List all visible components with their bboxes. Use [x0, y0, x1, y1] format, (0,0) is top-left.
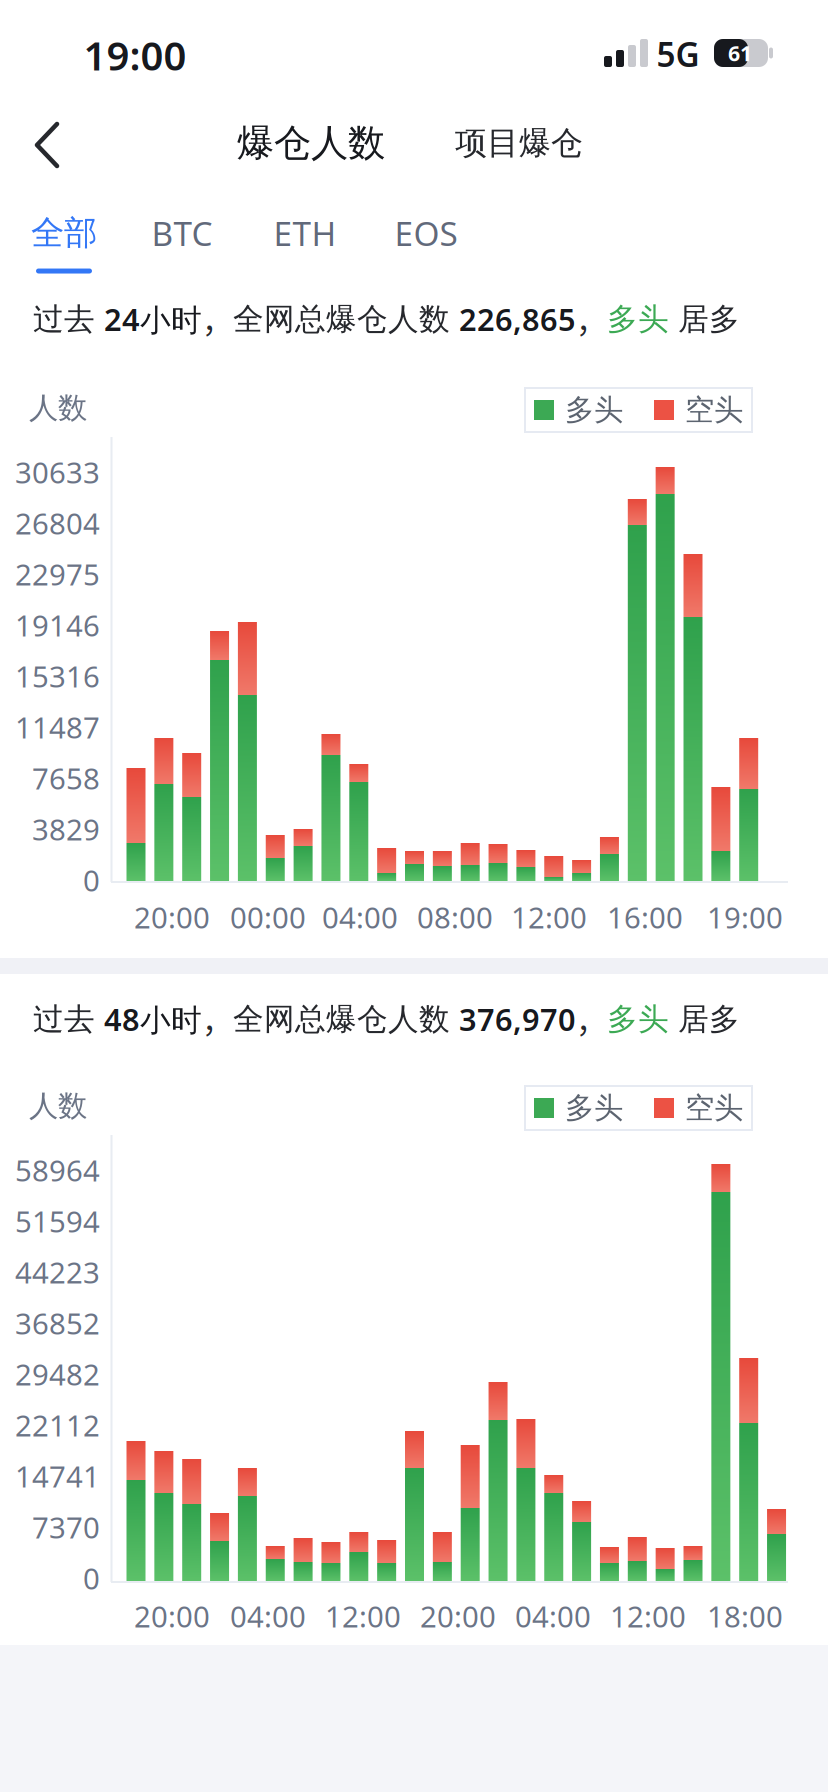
staticText: 多头: [565, 392, 623, 428]
staticText: 爆仓人数: [237, 120, 385, 166]
staticText: 多头: [607, 1000, 669, 1038]
staticText: 04:00: [515, 1596, 591, 1635]
staticText: 11487: [15, 707, 100, 746]
staticText: 居多: [669, 300, 740, 338]
button[interactable]: 项目爆仓: [455, 123, 583, 163]
staticText: 12:00: [511, 897, 587, 936]
button[interactable]: EOS: [394, 211, 457, 255]
button[interactable]: 空头: [654, 392, 743, 428]
staticText: 空头: [685, 1090, 743, 1126]
staticText: EOS: [394, 211, 457, 255]
staticText: ，: [576, 997, 607, 1041]
button[interactable]: 空头: [654, 1090, 743, 1126]
staticText: 04:00: [230, 1596, 306, 1635]
staticText: 376,970: [459, 999, 576, 1039]
staticText: 04:00: [322, 897, 398, 936]
staticText: 全网总爆仓人数: [233, 300, 459, 338]
staticText: 多头: [565, 1090, 623, 1126]
staticText: 24小时: [104, 299, 202, 339]
staticText: 0: [83, 860, 100, 899]
staticText: ETH: [273, 211, 336, 255]
staticText: 空头: [685, 392, 743, 428]
staticText: 全部: [31, 212, 97, 253]
staticText: 51594: [15, 1201, 100, 1240]
staticText: 18:00: [707, 1596, 783, 1635]
staticText: 226,865: [459, 299, 576, 339]
staticText: 3829: [32, 809, 100, 848]
button[interactable]: 多头: [534, 1090, 623, 1126]
staticText: 0: [83, 1558, 100, 1597]
button[interactable]: Back: [34, 121, 60, 169]
button[interactable]: 全部: [31, 212, 97, 253]
staticText: 全网总爆仓人数: [233, 1000, 459, 1038]
staticText: 48小时: [104, 999, 202, 1039]
staticText: 20:00: [134, 897, 210, 936]
staticText: 36852: [15, 1303, 100, 1342]
button[interactable]: ETH: [273, 211, 336, 255]
staticText: 项目爆仓: [455, 123, 583, 163]
staticText: 30633: [15, 452, 100, 491]
staticText: ，: [202, 297, 233, 341]
staticText: 22975: [15, 554, 100, 593]
staticText: 过去: [33, 300, 104, 338]
staticText: 20:00: [134, 1596, 210, 1635]
staticText: 19146: [15, 605, 100, 644]
staticText: 7658: [32, 758, 100, 797]
staticText: 人数: [29, 390, 87, 426]
staticText: 00:00: [230, 897, 306, 936]
staticText: 58964: [15, 1150, 100, 1189]
staticText: 44223: [15, 1252, 100, 1291]
button[interactable]: BTC: [151, 211, 212, 255]
staticText: 26804: [15, 503, 100, 542]
staticText: 08:00: [417, 897, 493, 936]
staticText: 19:00: [83, 28, 186, 81]
staticText: 15316: [15, 656, 100, 695]
button[interactable]: 爆仓人数: [237, 120, 385, 166]
staticText: 人数: [29, 1088, 87, 1124]
staticText: 12:00: [610, 1596, 686, 1635]
staticText: 14741: [15, 1456, 100, 1495]
staticText: ，: [576, 297, 607, 341]
staticText: 12:00: [325, 1596, 401, 1635]
staticText: 5G: [656, 32, 699, 76]
staticText: 61: [728, 39, 752, 67]
staticText: 7370: [32, 1507, 100, 1546]
button[interactable]: 多头: [534, 392, 623, 428]
staticText: BTC: [151, 211, 212, 255]
staticText: 19:00: [707, 897, 783, 936]
staticText: 16:00: [607, 897, 683, 936]
staticText: 22112: [15, 1405, 100, 1444]
staticText: 多头: [607, 300, 669, 338]
staticText: 居多: [669, 1000, 740, 1038]
staticText: 20:00: [420, 1596, 496, 1635]
staticText: 29482: [15, 1354, 100, 1393]
staticText: 过去: [33, 1000, 104, 1038]
staticText: ，: [202, 997, 233, 1041]
